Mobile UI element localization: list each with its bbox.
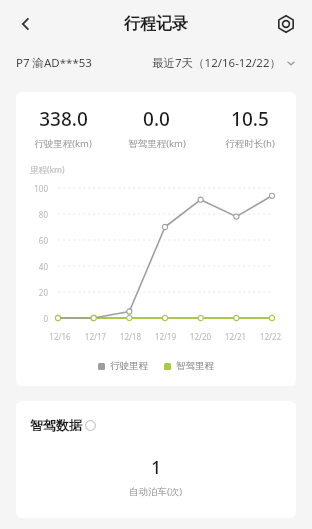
staticText: 行程记录 [124,14,188,34]
button[interactable]: Back [6,4,46,44]
staticText: 12/20 [183,331,218,342]
staticText: 行程时长(h) [225,137,275,150]
button[interactable]: 最近7天（12/16-12/22） [152,55,296,71]
staticText: 0 [16,313,48,324]
staticText: 1 [151,455,162,480]
button[interactable]: Info [85,420,96,431]
staticText: 智驾数据 [30,417,82,433]
staticText: 智驾里程 [176,360,214,372]
staticText: P7 渝AD***53 [16,55,92,71]
staticText: 最近7天（12/16-12/22） [152,55,281,71]
staticText: 60 [16,235,48,246]
staticText: 12/19 [148,331,183,342]
staticText: 40 [16,261,48,272]
staticText: 100 [16,183,48,194]
button[interactable]: P7 渝AD***53 [16,55,92,71]
staticText: 里程(km) [30,164,65,176]
staticText: 0.0 [143,106,170,132]
staticText: 20 [16,287,48,298]
staticText: 12/21 [218,331,253,342]
staticText: 12/22 [253,331,288,342]
staticText: 10.5 [231,106,269,132]
staticText: 338.0 [39,106,88,132]
staticText: 12/17 [78,331,113,342]
staticText: 80 [16,209,48,220]
staticText: 智驾里程(km) [128,137,186,150]
staticText: 行驶里程(km) [34,137,92,150]
staticText: 行驶里程 [110,360,148,372]
staticText: 12/16 [42,331,78,342]
staticText: 12/18 [113,331,148,342]
staticText: 自动泊车(次) [129,485,183,498]
button[interactable]: Settings [268,6,304,42]
